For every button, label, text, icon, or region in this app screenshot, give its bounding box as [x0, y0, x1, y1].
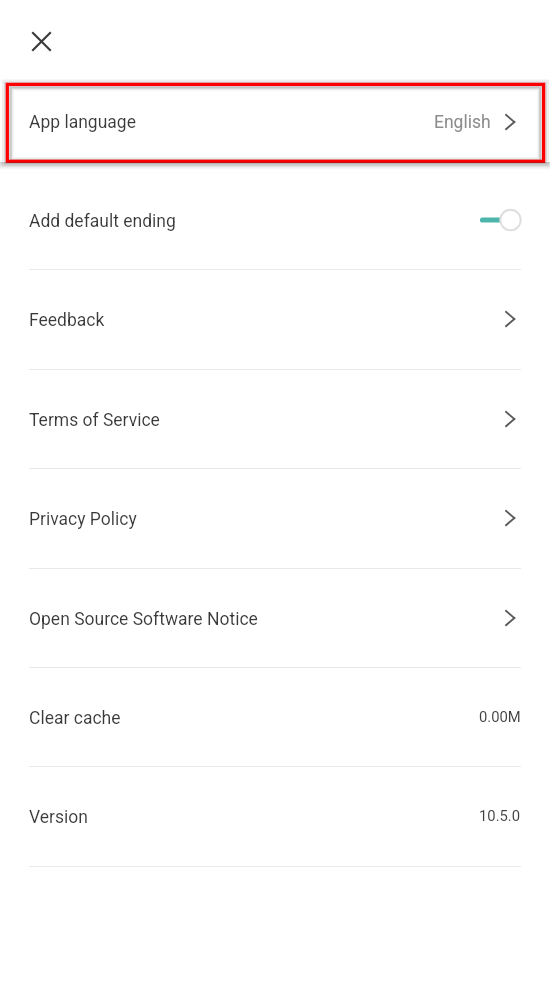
button[interactable]: Feedback — [0, 269, 550, 368]
button[interactable]: Terms of Service — [0, 369, 550, 468]
staticText: Add default ending — [29, 211, 176, 232]
button[interactable]: Privacy Policy — [0, 468, 550, 567]
staticText: App language — [29, 112, 136, 133]
staticText: 10.5.0 — [479, 807, 521, 824]
staticText: 0.00M — [479, 708, 521, 725]
button[interactable]: Version — [0, 766, 550, 865]
staticText: Version — [29, 807, 88, 828]
staticText: Feedback — [29, 310, 105, 331]
button[interactable]: Add default ending — [0, 170, 550, 269]
button[interactable]: Open Source Software Notice — [0, 568, 550, 667]
button[interactable]: Clear cache — [0, 667, 550, 766]
button[interactable]: App language — [0, 83, 550, 163]
button[interactable]: Close — [19, 19, 64, 64]
staticText: English — [434, 112, 491, 133]
staticText: Terms of Service — [29, 410, 160, 431]
staticText: Privacy Policy — [29, 509, 137, 530]
staticText: Clear cache — [29, 708, 121, 729]
staticText: Open Source Software Notice — [29, 609, 258, 630]
button[interactable]: Add default ending toggle, on — [480, 208, 521, 232]
